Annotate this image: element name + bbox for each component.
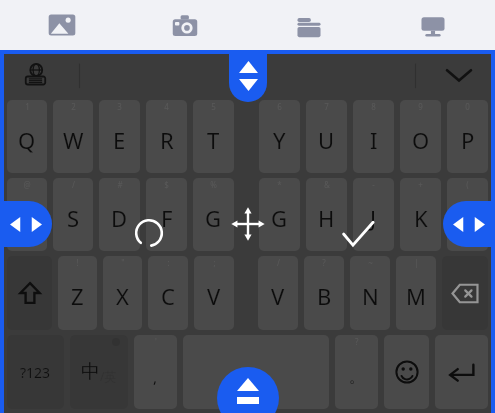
button[interactable]: "	[103, 256, 142, 330]
button[interactable]: 0	[447, 100, 488, 173]
staticText: G	[271, 203, 288, 233]
staticText: R	[160, 125, 174, 155]
button[interactable]: 7	[306, 100, 347, 173]
button[interactable]: 5	[193, 100, 234, 173]
button[interactable]: /	[258, 256, 298, 330]
button[interactable]: $	[146, 178, 187, 251]
button[interactable]: Chinese English toggle	[70, 335, 128, 409]
staticText: /	[277, 257, 280, 268]
button[interactable]: Screen mirror	[371, 0, 495, 50]
button[interactable]: (	[447, 178, 488, 251]
staticText: 4	[164, 101, 169, 112]
staticText: !	[76, 257, 79, 268]
button[interactable]: &	[306, 178, 347, 251]
button[interactable]: Space	[183, 335, 329, 409]
button[interactable]: Emoji	[384, 335, 429, 409]
button[interactable]: Resize vertically	[229, 50, 267, 102]
button[interactable]: Move keyboard	[225, 201, 271, 247]
staticText: 0	[465, 101, 470, 112]
button[interactable]: 2	[53, 100, 93, 173]
button[interactable]: #	[99, 178, 140, 251]
staticText: Z	[71, 281, 84, 311]
staticText: ?123	[20, 363, 51, 382]
button[interactable]: %	[193, 178, 234, 251]
staticText: ,	[153, 367, 158, 387]
staticText: 2	[71, 101, 76, 112]
button[interactable]: Shift	[7, 256, 52, 330]
button[interactable]: !	[58, 256, 97, 330]
staticText: U	[318, 125, 335, 155]
staticText: ?	[355, 336, 359, 347]
staticText: J	[370, 203, 377, 233]
staticText: ?	[322, 257, 326, 268]
staticText: |	[414, 257, 419, 268]
staticText: F	[161, 203, 173, 233]
button[interactable]: 4	[146, 100, 187, 173]
button[interactable]: Backspace	[442, 256, 488, 330]
staticText: V	[207, 281, 221, 311]
staticText: T	[207, 125, 220, 155]
staticText: O	[412, 125, 430, 155]
button[interactable]: ;	[194, 256, 234, 330]
button[interactable]: /	[53, 178, 93, 251]
staticText: #	[117, 179, 123, 190]
button[interactable]: -	[353, 178, 394, 251]
button[interactable]: :	[148, 256, 188, 330]
staticText: D	[111, 203, 128, 233]
button[interactable]: 8	[353, 100, 394, 173]
button[interactable]: Hide keyboard	[443, 59, 475, 91]
button[interactable]: 3	[99, 100, 140, 173]
staticText: L	[462, 203, 474, 233]
staticText: M	[406, 281, 426, 311]
button[interactable]: |	[396, 256, 436, 330]
staticText: &	[324, 179, 330, 190]
staticText: G	[205, 203, 222, 233]
button[interactable]: Switch language	[20, 60, 50, 90]
button[interactable]: 1	[7, 100, 47, 173]
staticText: 1	[25, 101, 30, 112]
staticText: %	[210, 179, 217, 190]
button[interactable]: Resize from right	[443, 201, 495, 247]
staticText: $	[164, 179, 169, 190]
staticText: Y	[273, 125, 286, 155]
button[interactable]: Resize from left	[0, 201, 52, 247]
button[interactable]: Files	[247, 0, 371, 50]
button[interactable]: +	[400, 178, 441, 251]
staticText: N	[362, 281, 379, 311]
staticText: 中	[81, 360, 100, 384]
button[interactable]: Resize down	[217, 367, 279, 413]
staticText: W	[63, 125, 84, 155]
staticText: V	[271, 281, 285, 311]
button[interactable]: Switch language	[4, 53, 491, 97]
staticText: 7	[324, 101, 329, 112]
staticText: K	[414, 203, 428, 233]
staticText: Q	[18, 125, 36, 155]
staticText: 。	[349, 368, 364, 387]
staticText: ;	[213, 257, 216, 268]
staticText: 3	[117, 101, 122, 112]
button[interactable]: @	[7, 178, 47, 251]
button[interactable]: Enter	[435, 335, 488, 409]
staticText: B	[317, 281, 332, 311]
button[interactable]: 6	[259, 100, 300, 173]
button[interactable]: Camera	[123, 0, 247, 50]
staticText: C	[161, 281, 175, 311]
button[interactable]: 9	[400, 100, 441, 173]
staticText: @	[23, 179, 31, 190]
staticText: A	[20, 203, 35, 233]
button[interactable]: ~	[350, 256, 390, 330]
staticText: E	[113, 125, 126, 155]
button[interactable]: *	[259, 178, 300, 251]
staticText: 5	[211, 101, 216, 112]
button[interactable]: Gallery	[0, 0, 123, 50]
button[interactable]: ?123	[7, 335, 64, 409]
button[interactable]: ?	[304, 256, 344, 330]
